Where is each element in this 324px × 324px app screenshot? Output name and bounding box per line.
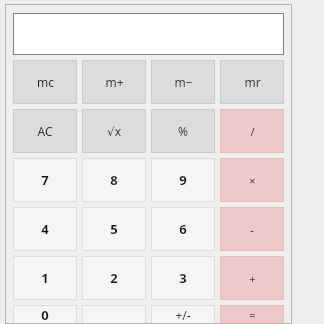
staticText: 8 xyxy=(110,171,118,189)
staticText: + xyxy=(249,271,256,286)
button[interactable]: √x xyxy=(82,109,146,153)
button[interactable]: Multiply xyxy=(220,158,284,202)
button[interactable]: Equals xyxy=(220,305,284,324)
button[interactable]: Display xyxy=(13,13,284,55)
button[interactable]: Add xyxy=(220,256,284,300)
staticText: = xyxy=(249,307,256,322)
button[interactable]: 7 xyxy=(13,158,77,202)
staticText: 0 xyxy=(41,306,49,324)
button[interactable]: 3 xyxy=(151,256,215,300)
button[interactable]: mr xyxy=(220,60,284,104)
staticText: m+ xyxy=(105,74,124,90)
button[interactable]: mc xyxy=(13,60,77,104)
button[interactable]: AC xyxy=(13,109,77,153)
button[interactable]: 4 xyxy=(13,207,77,251)
staticText: √x xyxy=(107,123,121,139)
staticText: / xyxy=(250,124,255,139)
staticText: mc xyxy=(37,74,54,90)
staticText: m− xyxy=(174,74,193,90)
staticText: 7 xyxy=(41,171,49,189)
button[interactable]: Blank xyxy=(82,305,146,324)
button[interactable]: 8 xyxy=(82,158,146,202)
button[interactable]: 1 xyxy=(13,256,77,300)
staticText: 2 xyxy=(110,269,118,287)
staticText: 5 xyxy=(110,220,118,238)
staticText: 1 xyxy=(41,269,49,287)
staticText: mr xyxy=(244,74,261,90)
button[interactable]: 0 xyxy=(13,305,77,324)
button[interactable]: m− xyxy=(151,60,215,104)
button[interactable]: m+ xyxy=(82,60,146,104)
button[interactable]: Divide xyxy=(220,109,284,153)
button[interactable]: 9 xyxy=(151,158,215,202)
staticText: % xyxy=(178,123,188,139)
button[interactable]: Subtract xyxy=(220,207,284,251)
staticText: - xyxy=(250,222,254,237)
button[interactable]: 6 xyxy=(151,207,215,251)
staticText: AC xyxy=(37,123,53,139)
button[interactable]: 2 xyxy=(82,256,146,300)
staticText: 4 xyxy=(41,220,49,238)
staticText: +/- xyxy=(175,307,191,323)
button[interactable]: +/- xyxy=(151,305,215,324)
staticText: 3 xyxy=(179,269,187,287)
button[interactable]: 5 xyxy=(82,207,146,251)
staticText: 9 xyxy=(179,171,187,189)
staticText: × xyxy=(249,173,256,188)
staticText: 6 xyxy=(179,220,187,238)
button[interactable]: % xyxy=(151,109,215,153)
